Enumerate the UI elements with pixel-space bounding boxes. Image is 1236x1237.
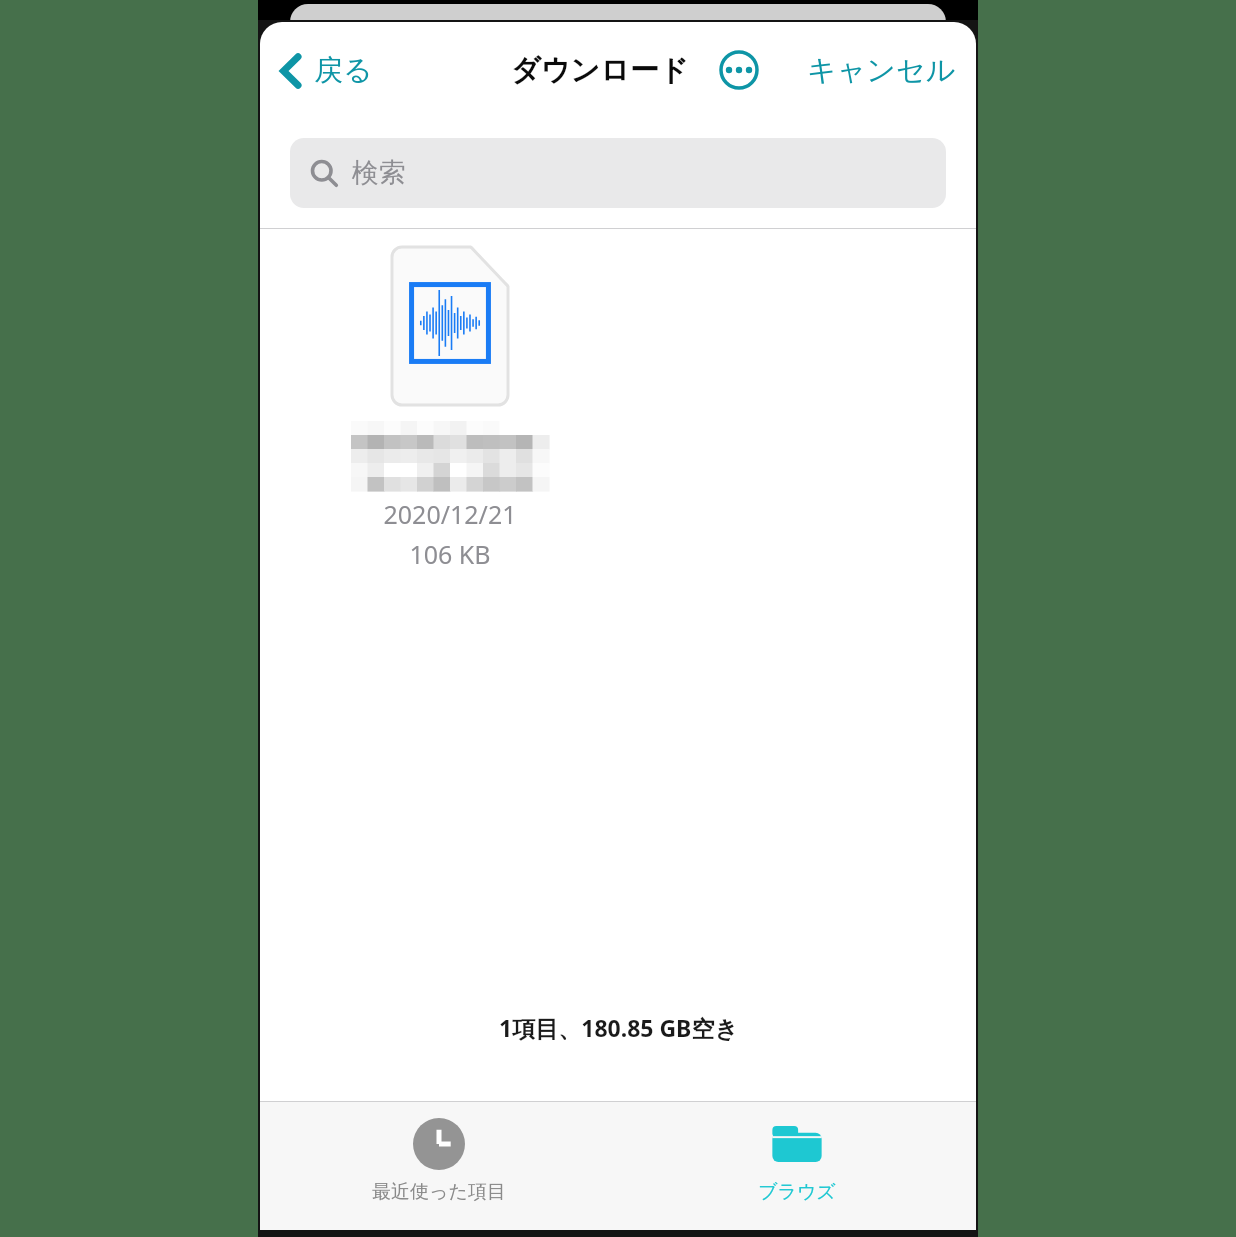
staticText: 2020/12/21 xyxy=(383,497,517,531)
button[interactable]: 戻る xyxy=(274,46,379,95)
staticText: 最近使った項目 xyxy=(372,1180,506,1204)
staticText: 検索 xyxy=(352,156,406,190)
staticText: ブラウズ xyxy=(758,1180,836,1204)
staticText: ダウンロード xyxy=(511,52,689,89)
staticText: 戻る xyxy=(314,52,373,89)
button[interactable]: キャンセル xyxy=(801,46,962,95)
button[interactable]: その他 xyxy=(715,46,763,94)
button[interactable]: 2020/12/21 xyxy=(340,245,560,571)
button[interactable]: 検索 xyxy=(290,138,946,208)
button[interactable]: ブラウズ xyxy=(618,1102,976,1230)
staticText: 106 KB xyxy=(409,537,491,571)
staticText: 1項目、180.85 GB空き xyxy=(499,1012,738,1043)
button[interactable]: 最近使った項目 xyxy=(260,1102,618,1230)
